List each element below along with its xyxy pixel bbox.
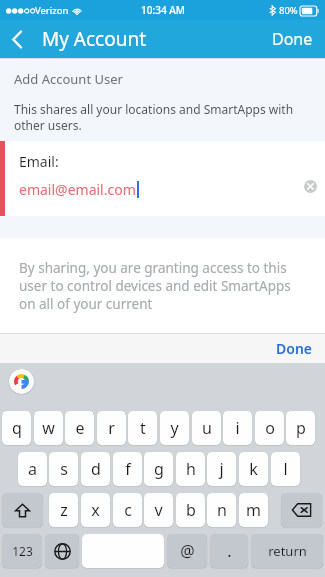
staticText: j xyxy=(219,458,224,480)
button[interactable]: g xyxy=(144,452,173,486)
button[interactable]: e xyxy=(65,411,94,445)
staticText: w xyxy=(42,417,55,439)
staticText: a xyxy=(28,458,37,480)
button[interactable]: Done xyxy=(260,22,325,56)
staticText: Done xyxy=(272,28,313,50)
button[interactable]: n xyxy=(207,493,236,527)
staticText: k xyxy=(249,458,258,480)
staticText: p xyxy=(296,417,306,439)
staticText: 123 xyxy=(12,543,33,559)
staticText: . xyxy=(227,540,232,562)
staticText: This shares all your locations and Smart… xyxy=(14,101,311,133)
button[interactable]: b xyxy=(176,493,205,527)
staticText: g xyxy=(154,458,164,480)
staticText: l xyxy=(283,458,288,480)
staticText: x xyxy=(91,499,100,521)
button[interactable]: Clear text xyxy=(295,171,325,201)
button[interactable]: Google xyxy=(9,369,34,394)
staticText: i xyxy=(235,417,240,439)
staticText: Add Account User xyxy=(14,70,123,88)
button[interactable]: Space xyxy=(82,534,164,568)
staticText: @ xyxy=(180,540,195,562)
button[interactable]: d xyxy=(81,452,110,486)
button[interactable]: Switch keyboard xyxy=(45,534,79,568)
staticText: b xyxy=(186,499,196,521)
staticText: v xyxy=(154,499,163,521)
staticText: Done xyxy=(276,339,313,358)
button[interactable]: t xyxy=(128,411,157,445)
staticText: m xyxy=(246,499,261,521)
button[interactable]: m xyxy=(239,493,268,527)
staticText: f xyxy=(125,458,131,480)
button[interactable]: q xyxy=(2,411,31,445)
staticText: My Account xyxy=(42,26,147,52)
staticText: o xyxy=(265,417,275,439)
button[interactable]: @ xyxy=(167,534,207,568)
button[interactable]: x xyxy=(81,493,110,527)
button[interactable]: p xyxy=(286,411,315,445)
button[interactable]: . xyxy=(210,534,248,568)
button[interactable]: s xyxy=(49,452,78,486)
staticText: return xyxy=(268,542,307,560)
staticText: s xyxy=(60,458,68,480)
button[interactable]: y xyxy=(160,411,189,445)
staticText: By sharing, you are granting access to t… xyxy=(19,259,307,313)
button[interactable]: i xyxy=(223,411,252,445)
button[interactable]: a xyxy=(18,452,47,486)
button[interactable]: Done xyxy=(264,334,325,363)
staticText: Verizon xyxy=(35,4,69,17)
button[interactable]: k xyxy=(239,452,268,486)
staticText: e xyxy=(75,417,85,439)
button[interactable]: Shift xyxy=(2,493,43,527)
button[interactable]: return xyxy=(251,534,323,568)
button[interactable]: l xyxy=(271,452,300,486)
button[interactable]: o xyxy=(255,411,284,445)
staticText: n xyxy=(217,499,227,521)
staticText: d xyxy=(91,458,101,480)
button[interactable]: h xyxy=(176,452,205,486)
staticText: r xyxy=(108,417,115,439)
button[interactable]: v xyxy=(144,493,173,527)
staticText: Email: xyxy=(19,152,59,171)
staticText: q xyxy=(12,417,22,439)
staticText: h xyxy=(186,458,196,480)
button[interactable]: 123 xyxy=(2,534,42,568)
staticText: 10:34 AM xyxy=(141,3,185,17)
staticText: u xyxy=(202,417,212,439)
button[interactable]: Back xyxy=(0,22,34,56)
button[interactable]: z xyxy=(49,493,78,527)
staticText: email@email.com xyxy=(19,180,136,199)
button[interactable]: c xyxy=(113,493,142,527)
button[interactable]: j xyxy=(207,452,236,486)
button[interactable]: w xyxy=(34,411,63,445)
button[interactable]: Backspace xyxy=(281,493,322,527)
staticText: c xyxy=(124,499,132,521)
staticText: t xyxy=(140,417,146,439)
staticText: y xyxy=(170,417,179,439)
button[interactable]: r xyxy=(97,411,126,445)
button[interactable]: u xyxy=(192,411,221,445)
button[interactable]: f xyxy=(113,452,142,486)
staticText: 80% xyxy=(279,4,298,17)
staticText: z xyxy=(60,499,68,521)
